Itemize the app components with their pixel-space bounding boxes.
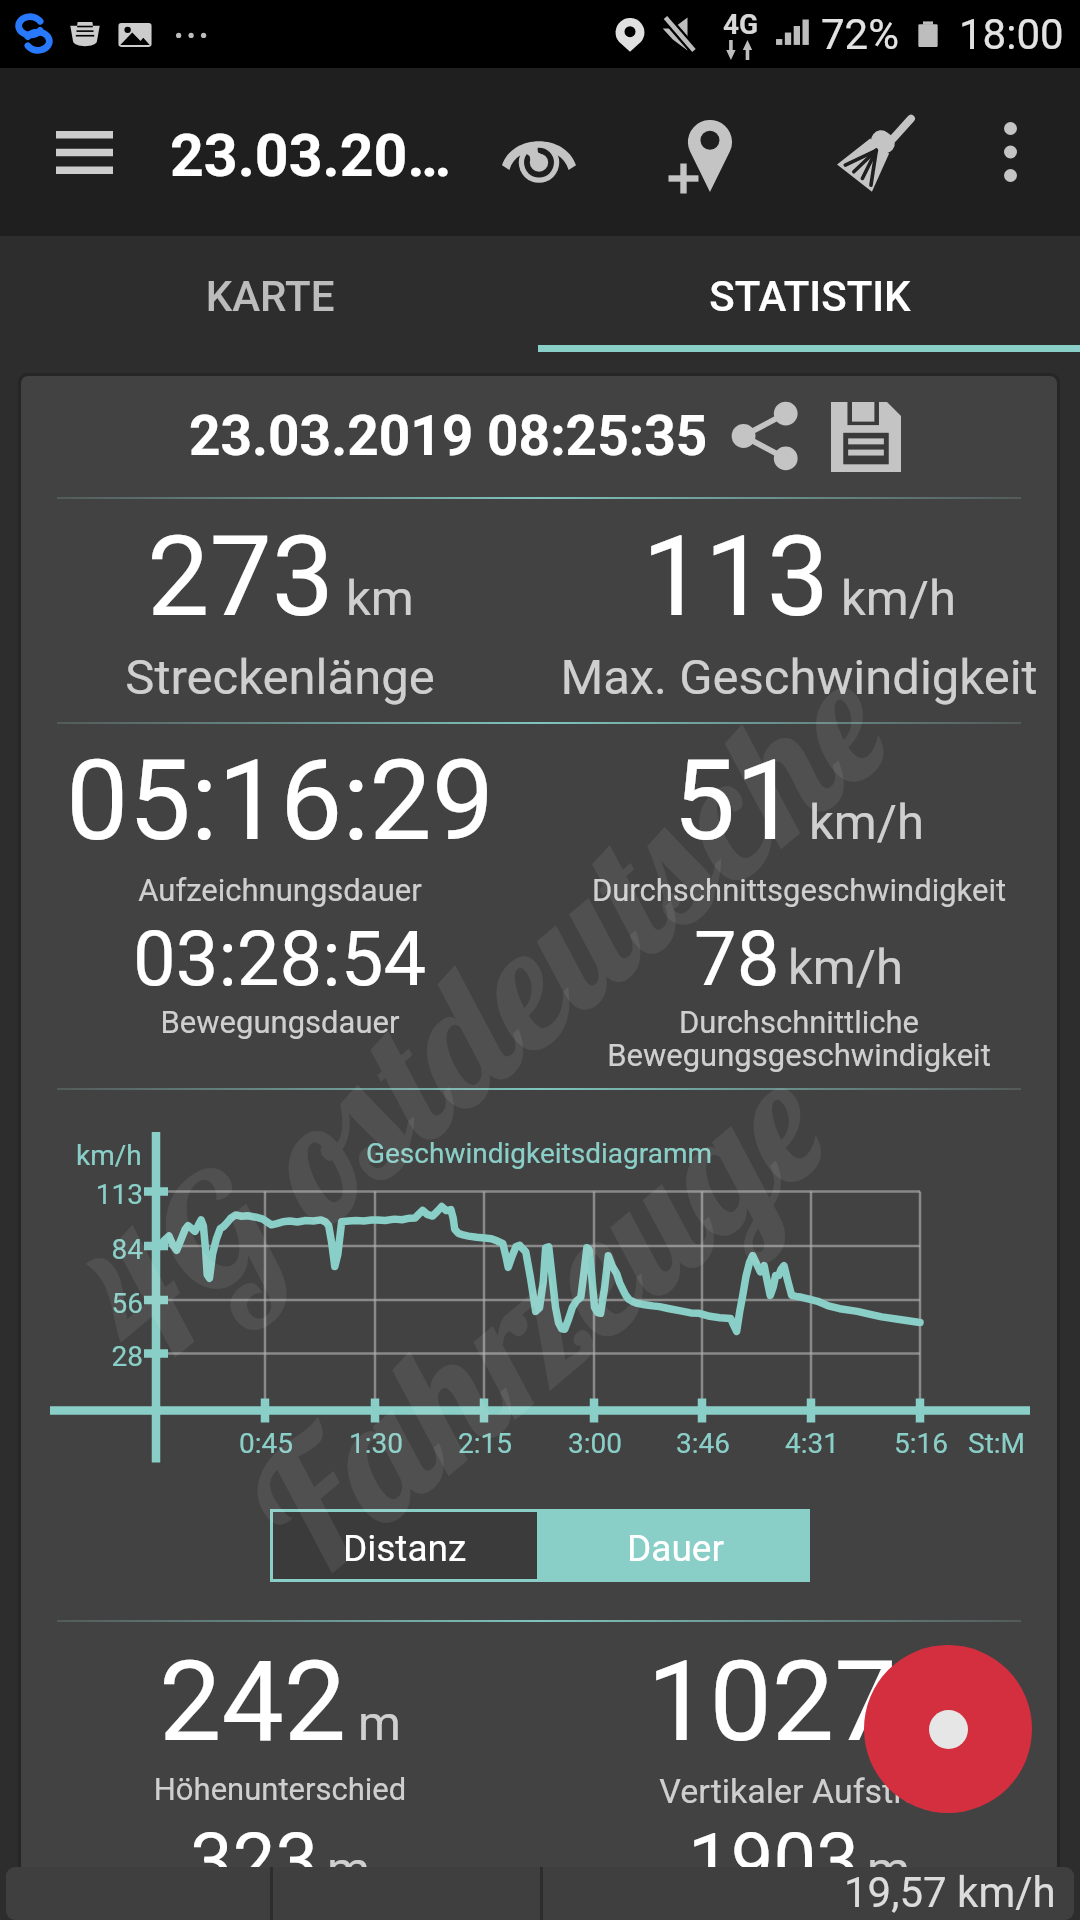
staticText: 323 [190,1816,319,1905]
staticText: 4G ostdeutsche [39,615,931,1412]
staticText: STATISTIK [610,272,1010,321]
staticText: 23.03.20… [170,121,452,190]
button[interactable]: Add waypoint [644,104,756,200]
staticText: Dauer [627,1527,724,1570]
staticText: 5:16 [851,1427,991,1460]
staticText: km/h [809,794,925,851]
staticText: 23.03.2019 08:25:35 [189,404,708,468]
staticText: Höhenunterschied [30,1771,530,1807]
button[interactable]: Save [818,392,910,484]
staticText: 28 [23,1340,143,1373]
staticText: m [327,1841,370,1898]
button[interactable]: Clear [812,104,924,200]
staticText: 51 [673,736,798,866]
staticText: m [358,1695,401,1752]
staticText: 84 [23,1233,143,1266]
button[interactable] [540,236,1080,368]
staticText: 56 [23,1287,143,1320]
button[interactable]: Distanz [270,1509,540,1582]
staticText: 4G [723,8,759,41]
staticText: 03:28:54 [133,914,427,1003]
staticText: 05:16:29 [66,736,495,866]
button[interactable]: More options [962,108,1058,196]
staticText: Vertikaler Aufstieg [548,1771,1050,1811]
staticText: 113 [23,1178,143,1211]
staticText: Geschwindigkeitsdiagramm [239,1137,839,1170]
button[interactable]: Record [864,1645,1032,1813]
staticText: km/h [841,570,957,627]
button[interactable]: Visibility [483,112,595,204]
staticText: 0:45 [196,1427,336,1460]
staticText: 78 [694,914,780,1003]
staticText: KARTE [70,272,470,321]
staticText: 273 [147,512,335,642]
staticText: Durchschnittliche Bewegungsgeschwindigke… [549,1004,1049,1074]
staticText: Streckenlänge [30,649,530,706]
staticText: 3:00 [525,1427,665,1460]
staticText: Fahrzeuge [203,1015,868,1622]
staticText: 72% [821,10,899,59]
staticText: km/h [788,939,904,996]
staticText: 18:00 [959,10,1064,59]
staticText: Aufzeichnungsdauer [30,872,530,908]
staticText: 19,57 km/h [844,1868,1056,1917]
staticText: km [346,570,414,627]
staticText: 1903 [688,1816,859,1905]
button[interactable]: Menu [28,108,140,196]
staticText: km/h [76,1139,142,1172]
button[interactable] [0,236,540,368]
button[interactable]: Dauer [540,1509,810,1582]
staticText: Max. Geschwindigkeit [539,649,1059,706]
staticText: 1:30 [306,1427,446,1460]
staticText: 1027 [647,1637,897,1767]
staticText: Bewegungsdauer [30,1004,530,1040]
staticText: m [908,1695,951,1752]
staticText: 4:31 [742,1427,882,1460]
staticText: 113 [642,512,830,642]
staticText: 3:46 [633,1427,773,1460]
staticText: m [867,1841,910,1898]
staticText: 242 [159,1637,347,1767]
staticText: St:M [968,1427,1026,1460]
staticText: Distanz [343,1527,467,1570]
button[interactable]: Share [720,392,812,484]
staticText: Durchschnittsgeschwindigkeit [549,872,1049,908]
staticText: 2:15 [415,1427,555,1460]
